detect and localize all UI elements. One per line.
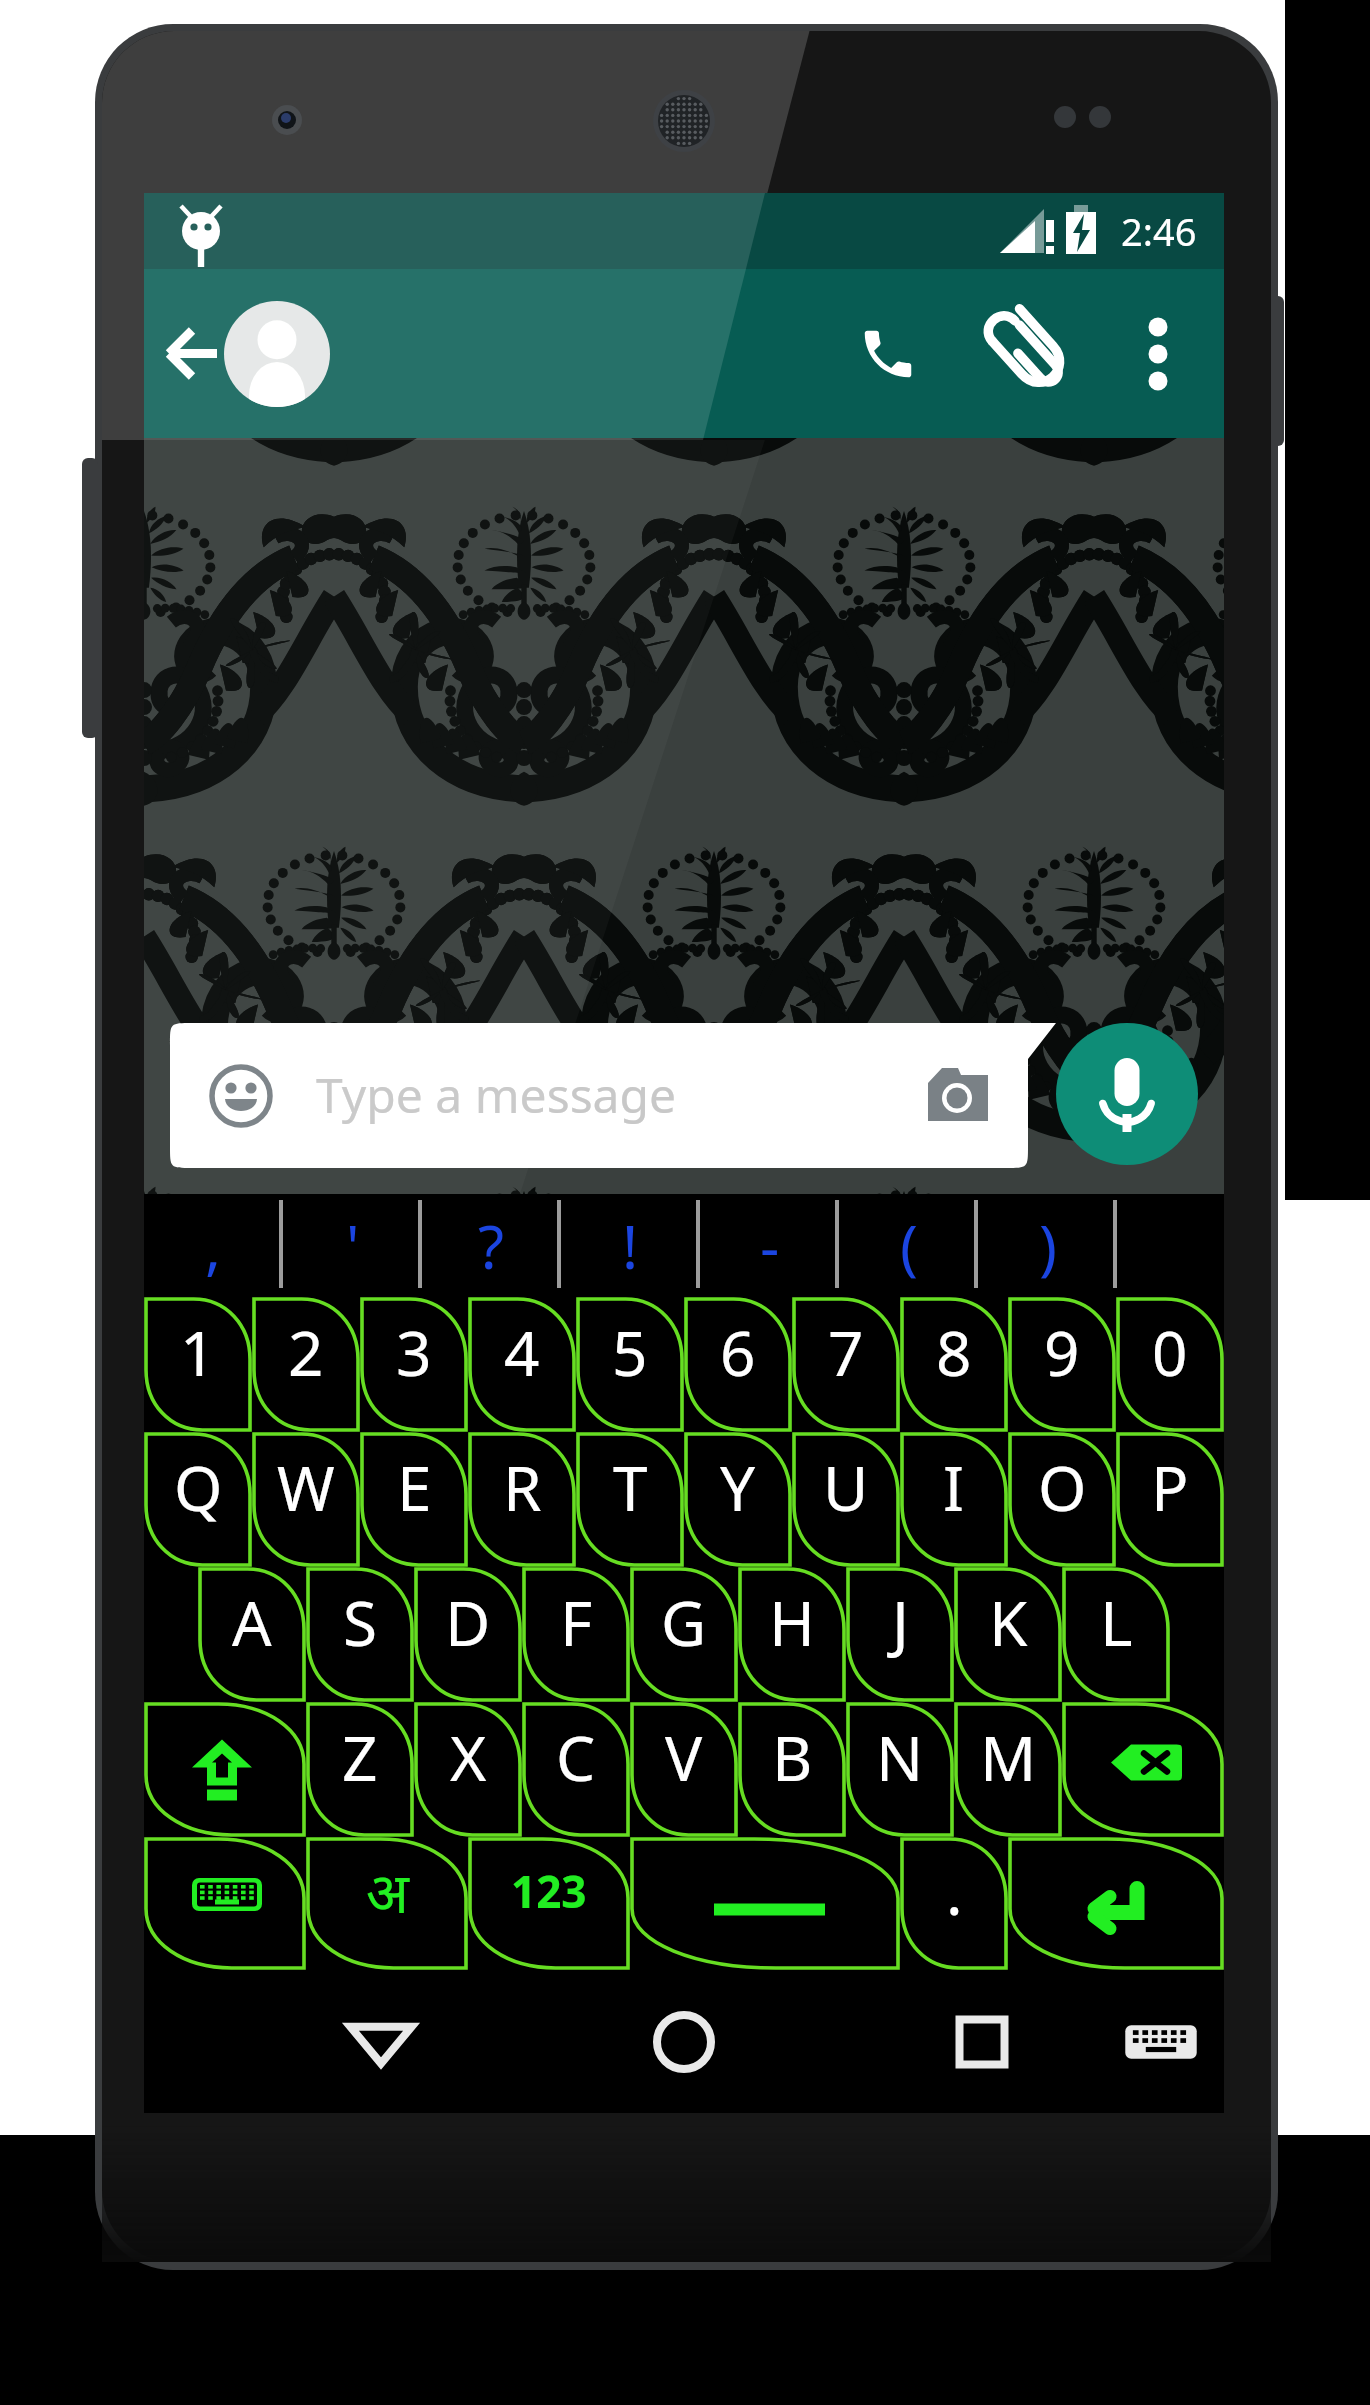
staticText: Q xyxy=(174,1445,223,1529)
staticText: Type a message xyxy=(316,1062,677,1127)
staticText: अ xyxy=(366,1853,409,1929)
button[interactable]: R xyxy=(468,1432,576,1567)
button[interactable]: I xyxy=(900,1432,1008,1567)
staticText: - xyxy=(760,1205,780,1287)
staticText: S xyxy=(343,1580,378,1664)
button[interactable]: . xyxy=(900,1837,1008,1970)
button[interactable]: P xyxy=(1116,1432,1224,1567)
staticText: 2:46 xyxy=(1121,205,1197,257)
staticText: G xyxy=(661,1580,707,1664)
staticText: A xyxy=(232,1580,272,1664)
button[interactable]: Recents xyxy=(892,1970,1072,2113)
button[interactable]: key xyxy=(1062,1702,1224,1837)
button[interactable]: M xyxy=(954,1702,1062,1837)
button[interactable]: - xyxy=(700,1194,839,1297)
staticText: H xyxy=(769,1580,815,1664)
button[interactable]: key xyxy=(1008,1837,1224,1970)
button[interactable]: T xyxy=(576,1432,684,1567)
button[interactable]: F xyxy=(522,1567,630,1702)
button[interactable]: 3 xyxy=(360,1297,468,1432)
button[interactable]: More options xyxy=(1095,291,1221,417)
button[interactable]: ! xyxy=(561,1194,700,1297)
staticText: E xyxy=(397,1445,432,1529)
button[interactable]: X xyxy=(414,1702,522,1837)
button[interactable]: 9 xyxy=(1008,1297,1116,1432)
button[interactable]: N xyxy=(846,1702,954,1837)
staticText: ( xyxy=(900,1205,918,1287)
button[interactable]: Z xyxy=(306,1702,414,1837)
staticText: . xyxy=(946,1849,963,1933)
staticText: L xyxy=(1100,1580,1133,1664)
button[interactable]: ( xyxy=(839,1194,978,1297)
button[interactable]: Contact photo xyxy=(224,301,330,407)
staticText: Z xyxy=(342,1715,378,1799)
button[interactable]: J xyxy=(846,1567,954,1702)
button[interactable]: 5 xyxy=(576,1297,684,1432)
staticText: B xyxy=(772,1715,813,1799)
staticText: ' xyxy=(346,1205,360,1287)
button[interactable]: 4 xyxy=(468,1297,576,1432)
staticText: O xyxy=(1038,1445,1087,1529)
button[interactable]: 123 xyxy=(468,1837,630,1970)
button[interactable]: Attach xyxy=(969,291,1095,417)
staticText: 2 xyxy=(288,1310,324,1394)
button[interactable]: Switch keyboard xyxy=(1091,1970,1231,2113)
button[interactable]: 0 xyxy=(1116,1297,1224,1432)
button[interactable]: key xyxy=(144,1837,306,1970)
button[interactable]: Q xyxy=(144,1432,252,1567)
staticText: F xyxy=(560,1580,593,1664)
staticText: 0 xyxy=(1152,1310,1188,1394)
staticText: X xyxy=(450,1715,487,1799)
button[interactable]: key xyxy=(144,1702,306,1837)
button[interactable]: ' xyxy=(283,1194,422,1297)
staticText: N xyxy=(876,1715,924,1799)
staticText: R xyxy=(503,1445,542,1529)
button[interactable]: H xyxy=(738,1567,846,1702)
button[interactable]: ) xyxy=(978,1194,1117,1297)
button[interactable]: A xyxy=(198,1567,306,1702)
button[interactable]: ? xyxy=(422,1194,561,1297)
staticText: 7 xyxy=(828,1310,864,1394)
staticText: 9 xyxy=(1044,1310,1080,1394)
button[interactable]: S xyxy=(306,1567,414,1702)
button[interactable]: Call xyxy=(825,291,951,417)
button[interactable]: 1 xyxy=(144,1297,252,1432)
button[interactable]: 7 xyxy=(792,1297,900,1432)
staticText: 123 xyxy=(511,1861,587,1921)
button[interactable]: D xyxy=(414,1567,522,1702)
staticText: K xyxy=(989,1580,1028,1664)
staticText: 1 xyxy=(180,1310,216,1394)
button[interactable]: , xyxy=(144,1194,283,1297)
button[interactable]: Back xyxy=(144,269,224,438)
button[interactable]: Home xyxy=(594,1970,774,2113)
button[interactable]: 8 xyxy=(900,1297,1008,1432)
staticText: M xyxy=(980,1715,1037,1799)
button[interactable]: O xyxy=(1008,1432,1116,1567)
button[interactable]: L xyxy=(1062,1567,1170,1702)
button[interactable]: B xyxy=(738,1702,846,1837)
button[interactable]: E xyxy=(360,1432,468,1567)
staticText: ! xyxy=(622,1205,639,1287)
button[interactable]: अ xyxy=(306,1837,468,1970)
button[interactable]: G xyxy=(630,1567,738,1702)
staticText: D xyxy=(445,1580,491,1664)
button[interactable]: W xyxy=(252,1432,360,1567)
staticText: W xyxy=(277,1445,335,1529)
button[interactable]: C xyxy=(522,1702,630,1837)
staticText: ) xyxy=(1039,1205,1057,1287)
button[interactable]: V xyxy=(630,1702,738,1837)
staticText: , xyxy=(205,1205,222,1287)
button[interactable]: Y xyxy=(684,1432,792,1567)
staticText: 3 xyxy=(396,1310,432,1394)
staticText: Y xyxy=(720,1445,756,1529)
button[interactable]: Hide keyboard xyxy=(291,1970,471,2113)
button[interactable]: 6 xyxy=(684,1297,792,1432)
button[interactable]: U xyxy=(792,1432,900,1567)
staticText: T xyxy=(613,1445,648,1529)
button[interactable]: key xyxy=(630,1837,900,1970)
staticText: C xyxy=(556,1715,596,1799)
staticText: 5 xyxy=(612,1310,648,1394)
button[interactable]: K xyxy=(954,1567,1062,1702)
button[interactable]: 2 xyxy=(252,1297,360,1432)
staticText: 6 xyxy=(720,1310,756,1394)
